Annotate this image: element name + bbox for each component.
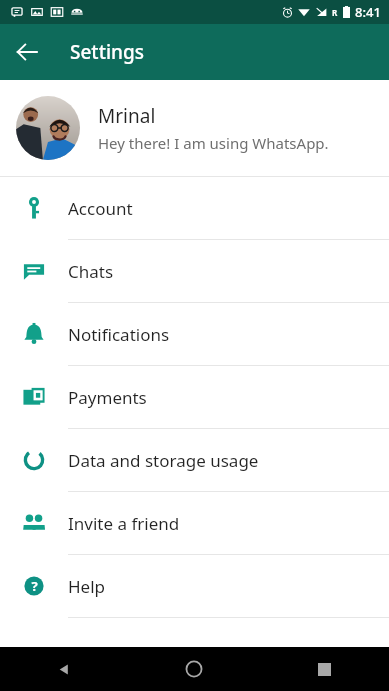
button[interactable]: Account <box>0 177 389 240</box>
button[interactable]: Back <box>0 647 129 691</box>
staticText: Payments <box>68 386 147 409</box>
staticText: Hey there! I am using WhatsApp. <box>98 133 329 153</box>
staticText: R <box>332 7 338 18</box>
button[interactable]: Home <box>129 647 259 691</box>
staticText: Data and storage usage <box>68 449 259 472</box>
button[interactable]: Payments <box>0 366 389 429</box>
staticText: Mrinal <box>98 103 156 129</box>
button[interactable]: Data and storage usage <box>0 429 389 492</box>
staticText: Account <box>68 197 133 220</box>
button[interactable]: Chats <box>0 240 389 303</box>
button[interactable]: Mrinal <box>0 80 389 176</box>
button[interactable]: Back <box>4 29 50 75</box>
staticText: Notifications <box>68 323 170 346</box>
staticText: Settings <box>70 39 144 65</box>
staticText: 8:41 <box>355 3 381 21</box>
staticText: Chats <box>68 260 114 283</box>
button[interactable]: ? <box>0 555 389 618</box>
button[interactable]: Invite a friend <box>0 492 389 555</box>
staticText: Help <box>68 575 106 598</box>
staticText: ? <box>31 577 38 595</box>
button[interactable]: Recent apps <box>259 647 389 691</box>
button[interactable]: Notifications <box>0 303 389 366</box>
staticText: Invite a friend <box>68 512 180 535</box>
